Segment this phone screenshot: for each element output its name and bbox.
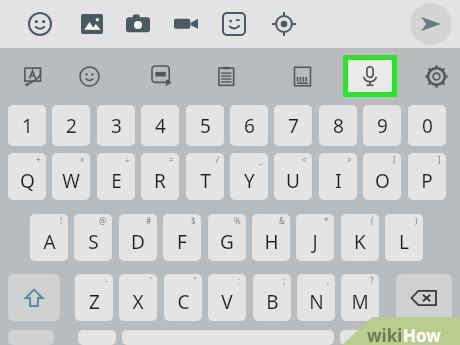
button[interactable]: / — [186, 153, 224, 200]
button[interactable]: Shift — [8, 274, 60, 321]
button[interactable]: Video — [170, 8, 202, 40]
staticText: ) — [415, 215, 418, 226]
staticText: E — [111, 168, 122, 194]
staticText: 5 — [200, 113, 211, 139]
button[interactable] — [340, 330, 378, 345]
button[interactable]: * — [296, 214, 334, 261]
button[interactable]: $ — [163, 214, 201, 261]
staticText: $ — [191, 215, 196, 226]
button[interactable]: ' — [119, 274, 157, 321]
button[interactable]: ] — [408, 153, 446, 200]
button[interactable]: ) — [385, 214, 423, 261]
button[interactable]: 1 — [8, 105, 46, 146]
button[interactable]: Gallery — [76, 8, 108, 40]
staticText: @ — [99, 215, 107, 226]
button[interactable]: 5 — [186, 105, 224, 146]
button[interactable]: " — [164, 274, 202, 321]
button[interactable]: ; — [253, 274, 291, 321]
staticText: 3 — [111, 113, 122, 139]
staticText: > — [347, 154, 352, 165]
staticText: W — [62, 168, 80, 194]
button[interactable]: Backspace — [396, 274, 452, 321]
staticText: S — [88, 229, 99, 255]
staticText: ; — [283, 275, 286, 286]
staticText: ? — [370, 275, 374, 286]
button[interactable]: 2 — [52, 105, 90, 146]
button[interactable]: > — [319, 153, 357, 200]
button[interactable]: _ — [230, 153, 268, 200]
button[interactable]: Emoji — [75, 62, 103, 90]
button[interactable]: Camera — [122, 8, 154, 40]
button[interactable]: # — [119, 214, 157, 261]
staticText: F — [177, 229, 187, 255]
button[interactable]: 7 — [274, 105, 312, 146]
button[interactable]: Emoji — [24, 8, 56, 40]
staticText: U — [286, 168, 300, 194]
staticText: 9 — [377, 113, 388, 139]
button[interactable]: ! — [30, 214, 68, 261]
button[interactable]: , — [297, 274, 335, 321]
button[interactable]: Send — [410, 3, 452, 45]
button[interactable]: & — [252, 214, 290, 261]
staticText: [ — [393, 154, 396, 165]
staticText: I — [335, 168, 342, 194]
staticText: K — [354, 229, 366, 255]
staticText: , — [327, 275, 330, 286]
button[interactable]: % — [208, 214, 246, 261]
staticText: G — [220, 229, 234, 255]
button[interactable]: Keyboard mode — [288, 62, 316, 90]
button[interactable]: = — [141, 153, 179, 200]
button[interactable]: Settings — [422, 62, 450, 90]
button[interactable]: 8 — [319, 105, 357, 146]
staticText: = — [169, 154, 174, 165]
staticText: : — [238, 275, 241, 286]
staticText: V — [221, 289, 233, 315]
staticText: J — [312, 229, 318, 255]
staticText: 0 — [422, 113, 433, 139]
staticText: wiki — [367, 324, 403, 345]
staticText: 4 — [155, 113, 166, 139]
button[interactable]: : — [208, 274, 246, 321]
button[interactable]: Text style — [18, 62, 46, 90]
staticText: X — [132, 289, 144, 315]
button[interactable] — [122, 330, 334, 345]
staticText: ' — [150, 275, 152, 286]
staticText: < — [302, 154, 307, 165]
staticText: N — [309, 289, 324, 315]
staticText: How — [403, 324, 441, 345]
staticText: " — [193, 275, 197, 286]
staticText: / — [216, 154, 219, 165]
button[interactable]: 0 — [408, 105, 446, 146]
button[interactable] — [8, 330, 54, 345]
button[interactable]: @ — [74, 214, 112, 261]
button[interactable]: 9 — [363, 105, 401, 146]
button[interactable]: ? — [341, 274, 379, 321]
button[interactable]: × — [52, 153, 90, 200]
button[interactable]: [ — [363, 153, 401, 200]
button[interactable]: + — [8, 153, 46, 200]
button[interactable]: GIF — [148, 62, 176, 90]
staticText: ( — [371, 215, 374, 226]
button[interactable]: - — [75, 274, 113, 321]
staticText: A — [43, 229, 56, 255]
staticText: - — [105, 275, 108, 286]
staticText: P — [421, 168, 433, 194]
button[interactable]: ÷ — [97, 153, 135, 200]
button[interactable]: Voice input — [348, 60, 392, 92]
button[interactable]: Sticker — [218, 8, 250, 40]
button[interactable]: < — [274, 153, 312, 200]
staticText: ÷ — [125, 154, 130, 165]
staticText: 1 — [22, 113, 33, 139]
staticText: _ — [259, 154, 263, 165]
button[interactable]: 6 — [230, 105, 268, 146]
button[interactable]: Location — [268, 8, 300, 40]
button[interactable]: Clipboard — [212, 62, 240, 90]
staticText: % — [234, 215, 241, 226]
staticText: M — [351, 289, 369, 315]
staticText: B — [266, 289, 279, 315]
button[interactable] — [78, 330, 116, 345]
button[interactable]: ( — [341, 214, 379, 261]
button[interactable]: 3 — [97, 105, 135, 146]
staticText: 8 — [333, 113, 344, 139]
button[interactable]: 4 — [141, 105, 179, 146]
